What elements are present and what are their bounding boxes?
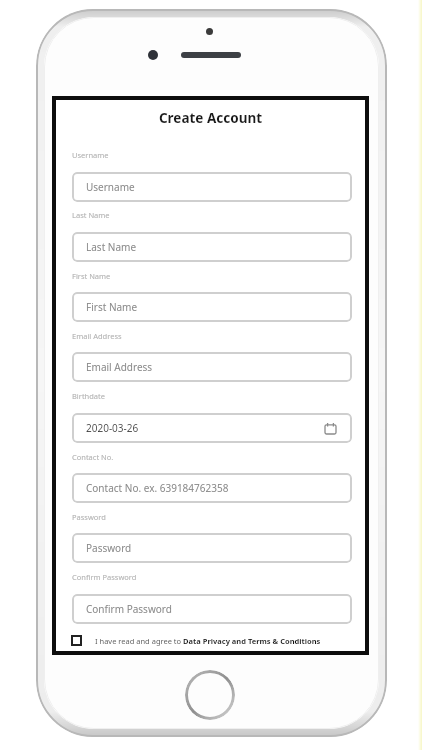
staticText: Password [72, 512, 106, 522]
staticText: Email Address [72, 331, 122, 341]
staticText: First Name [86, 300, 138, 314]
button[interactable]: Last Name [72, 232, 352, 262]
staticText: Birthdate [72, 391, 106, 401]
button[interactable]: Username [72, 172, 352, 202]
staticText: Username [72, 150, 109, 160]
staticText: Last Name [86, 240, 137, 254]
staticText: Username [86, 180, 135, 194]
button[interactable]: Password [72, 533, 352, 563]
button[interactable]: First Name [72, 292, 352, 322]
button[interactable]: Contact No. ex. 639184762358 [72, 473, 352, 503]
button[interactable]: I have read and agree to Data Privacy an… [95, 636, 321, 646]
button[interactable] [71, 635, 82, 646]
staticText: Contact No. [72, 452, 114, 462]
staticText: Confirm Password [86, 602, 172, 616]
button[interactable]: 2020-03-26 [72, 413, 352, 443]
staticText: Password [86, 541, 132, 555]
button[interactable]: Email Address [72, 352, 352, 382]
staticText: Last Name [72, 210, 110, 220]
staticText: Create Account [52, 109, 369, 127]
button[interactable] [185, 670, 235, 720]
staticText: Confirm Password [72, 572, 137, 582]
staticText: 2020-03-26 [86, 421, 139, 435]
button[interactable]: Confirm Password [72, 594, 352, 624]
staticText: Contact No. ex. 639184762358 [86, 481, 229, 495]
staticText: First Name [72, 271, 111, 281]
staticText: Email Address [86, 360, 153, 374]
